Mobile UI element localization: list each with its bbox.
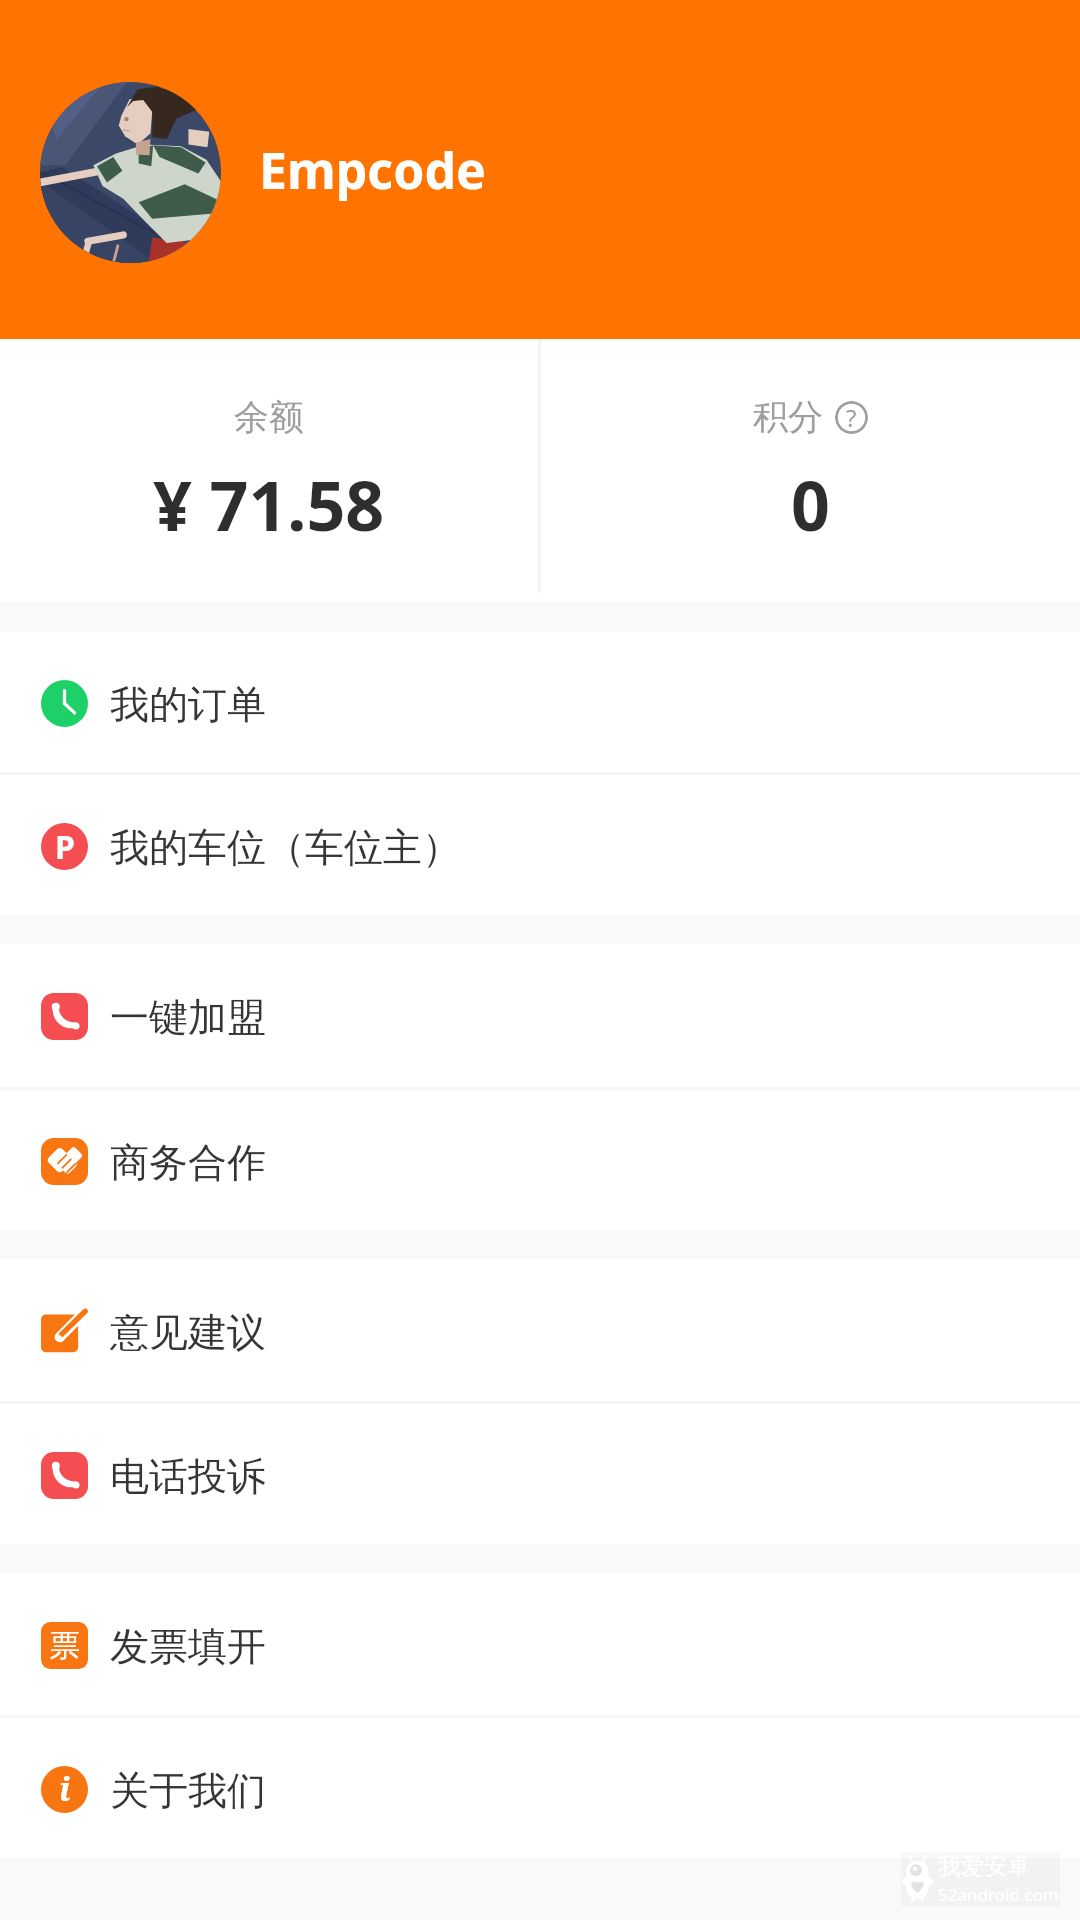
staticText: ¥ 71.58 [153,458,385,551]
staticText: 我的订单 [110,680,266,729]
button[interactable]: 意见建议 [0,1259,1080,1401]
button[interactable]: 我的订单 [0,632,1080,772]
staticText: 我爱安卓 [938,1852,1030,1881]
staticText: 我的车位（车位主） [110,823,461,872]
staticText: i [59,1767,71,1811]
staticText: 52android.com [938,1883,1059,1906]
staticText: 电话投诉 [110,1452,266,1501]
staticText: P [55,825,75,869]
staticText: 关于我们 [110,1766,266,1815]
button[interactable]: Profile photo [40,82,221,263]
staticText: 票 [49,1626,80,1665]
button[interactable]: 商务合作 [0,1090,1080,1230]
staticText: 意见建议 [110,1308,266,1357]
button[interactable]: About points [835,401,868,434]
staticText: 余额 [234,395,304,439]
staticText: 一键加盟 [110,993,266,1042]
button[interactable]: 积分 [541,339,1080,602]
staticText: 商务合作 [110,1138,266,1187]
staticText: 积分 [753,395,823,439]
staticText: Empcode [259,136,486,204]
staticText: ? [846,401,857,434]
button[interactable]: i [0,1718,1080,1858]
button[interactable]: 一键加盟 [0,944,1080,1087]
button[interactable]: 余额 [0,339,538,602]
button[interactable]: 电话投诉 [0,1404,1080,1544]
staticText: 发票填开 [110,1622,266,1671]
staticText: 0 [791,458,830,551]
button[interactable]: 票 [0,1573,1080,1715]
button[interactable]: P [0,775,1080,915]
